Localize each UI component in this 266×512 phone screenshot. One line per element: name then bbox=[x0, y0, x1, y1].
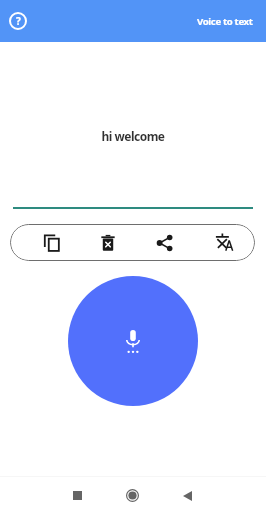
button[interactable]: Copy bbox=[33, 224, 70, 261]
button[interactable]: Translate bbox=[205, 224, 242, 260]
staticText: ? bbox=[16, 14, 21, 28]
staticText: hi welcome bbox=[101, 128, 165, 144]
staticText: Voice to text bbox=[197, 15, 253, 28]
button[interactable]: Delete bbox=[89, 224, 126, 261]
button[interactable]: Back bbox=[165, 477, 210, 512]
button[interactable]: Home bbox=[110, 477, 155, 512]
button[interactable]: Help bbox=[2, 5, 34, 37]
button[interactable]: Share bbox=[146, 224, 183, 261]
button[interactable]: Recents bbox=[55, 477, 100, 512]
button[interactable]: Start voice input bbox=[68, 276, 198, 406]
